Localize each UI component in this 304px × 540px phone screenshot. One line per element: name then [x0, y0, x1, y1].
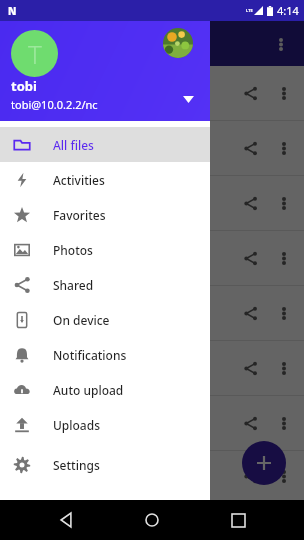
button[interactable]: Shared	[0, 267, 210, 302]
button[interactable]: More options	[267, 406, 301, 440]
staticText: tobi	[11, 77, 37, 95]
staticText: T	[28, 36, 42, 71]
button[interactable]: Notifications	[0, 337, 210, 372]
button[interactable]: Photos	[0, 232, 210, 267]
staticText: Notifications	[53, 347, 127, 363]
button[interactable]: Share	[0, 286, 304, 340]
button[interactable]: Share	[233, 186, 267, 220]
button[interactable]: More options	[267, 131, 301, 165]
staticText: On device	[53, 312, 110, 328]
button[interactable]: Share	[0, 341, 304, 395]
button[interactable]: On device	[0, 302, 210, 337]
button[interactable]: Share	[233, 76, 267, 110]
staticText: N	[8, 4, 17, 18]
button[interactable]: Settings	[0, 447, 210, 482]
button[interactable]: Share	[0, 231, 304, 285]
button[interactable]: Share	[233, 241, 267, 275]
button[interactable]: More options	[267, 351, 301, 385]
button[interactable]: Activities	[0, 162, 210, 197]
staticText: Auto upload	[53, 382, 124, 398]
button[interactable]: Favorites	[0, 197, 210, 232]
staticText: tobi@10.0.2.2/nc	[11, 97, 98, 112]
button[interactable]: More options	[267, 241, 301, 275]
staticText: Shared	[53, 277, 94, 293]
button[interactable]: Auto upload	[0, 372, 210, 407]
staticText: LTE	[246, 8, 253, 13]
button[interactable]: Share	[233, 131, 267, 165]
button[interactable]: Share	[0, 66, 304, 120]
staticText: 4:14	[277, 3, 299, 18]
button[interactable]: Recents	[218, 500, 258, 540]
button[interactable]: Share	[0, 451, 304, 500]
button[interactable]: Share	[0, 176, 304, 230]
button[interactable]: Share	[233, 351, 267, 385]
button[interactable]: More options	[267, 459, 301, 493]
staticText: Photos	[53, 242, 93, 258]
staticText: Settings	[53, 457, 100, 473]
button[interactable]: Share	[0, 121, 304, 175]
button[interactable]: Expand accounts	[178, 89, 198, 109]
button[interactable]: T	[0, 21, 210, 121]
button[interactable]: Switch account	[163, 28, 193, 58]
button[interactable]: Add	[242, 441, 286, 485]
staticText: Activities	[53, 172, 105, 188]
button[interactable]: All files	[0, 127, 210, 162]
staticText: All files	[53, 137, 94, 153]
button[interactable]: Uploads	[0, 407, 210, 442]
staticText: Uploads	[53, 417, 101, 433]
button[interactable]: More options	[264, 27, 298, 61]
button[interactable]: Share	[0, 396, 304, 450]
button[interactable]: Back	[46, 500, 86, 540]
staticText: Favorites	[53, 207, 106, 223]
button[interactable]: More options	[267, 186, 301, 220]
button[interactable]: Share	[233, 296, 267, 330]
button[interactable]: More options	[267, 296, 301, 330]
button[interactable]: More options	[267, 76, 301, 110]
button[interactable]: Share	[233, 406, 267, 440]
button[interactable]: Share	[233, 459, 267, 493]
button[interactable]: Home	[132, 500, 172, 540]
